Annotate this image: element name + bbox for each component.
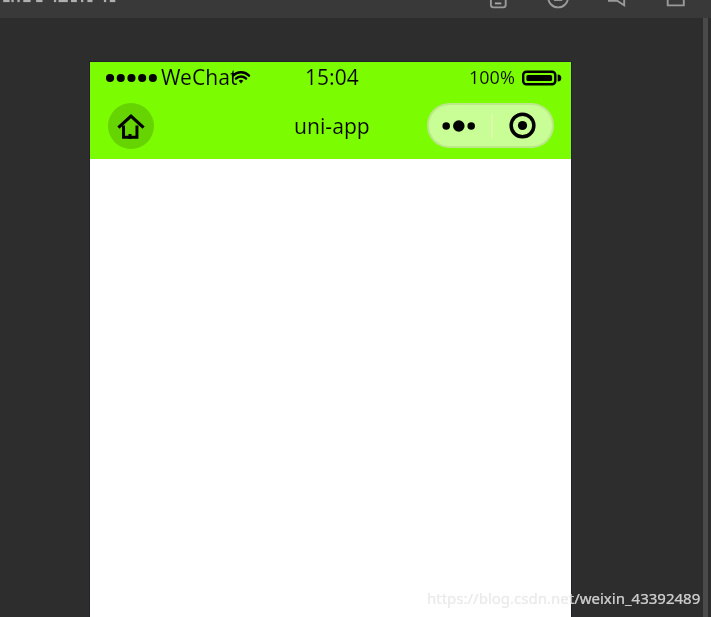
- staticText: https://blog.csdn.net/weixin_43392489: [427, 588, 701, 608]
- staticText: WeChat: [161, 63, 238, 92]
- button[interactable]: Close mini program: [492, 105, 552, 146]
- staticText: 15:04: [305, 63, 359, 92]
- button[interactable]: Home: [108, 103, 154, 149]
- button[interactable]: More options: [429, 105, 489, 146]
- staticText: 100%: [469, 65, 515, 90]
- staticText: uni-app: [294, 112, 370, 141]
